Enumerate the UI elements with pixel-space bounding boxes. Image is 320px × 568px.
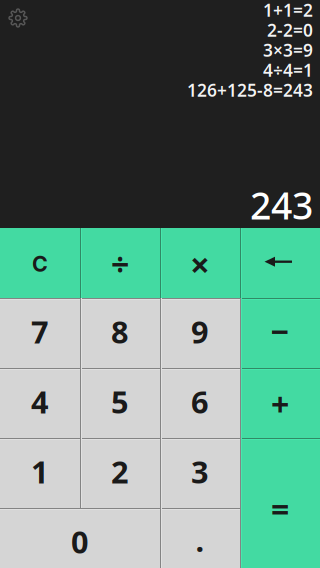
button[interactable]: 9 bbox=[160, 298, 240, 368]
button[interactable]: 2 bbox=[80, 438, 160, 508]
staticText: 243 bbox=[250, 180, 313, 230]
staticText: ÷ bbox=[111, 242, 129, 286]
button[interactable]: 4 bbox=[0, 368, 80, 438]
button[interactable]: 6 bbox=[160, 368, 240, 438]
staticText: 8 bbox=[111, 311, 129, 352]
staticText: 5 bbox=[111, 381, 129, 422]
button[interactable]: 8 bbox=[80, 298, 160, 368]
button[interactable]: ÷ bbox=[80, 228, 160, 298]
button[interactable]: C bbox=[0, 228, 80, 298]
staticText: . bbox=[195, 519, 204, 561]
staticText: 3×3=9 bbox=[263, 38, 313, 62]
button[interactable]: . bbox=[160, 508, 240, 568]
staticText: × bbox=[190, 240, 210, 288]
staticText: C bbox=[32, 251, 48, 277]
staticText: 2-2=0 bbox=[267, 18, 313, 42]
staticText: + bbox=[271, 382, 289, 426]
button[interactable]: − bbox=[240, 298, 320, 368]
staticText: = bbox=[271, 487, 289, 531]
staticText: − bbox=[270, 309, 289, 353]
staticText: 9 bbox=[191, 311, 209, 352]
button[interactable]: Settings bbox=[1, 1, 35, 35]
button[interactable]: × bbox=[160, 228, 240, 298]
staticText: 0 bbox=[71, 521, 89, 562]
button[interactable]: 0 bbox=[0, 508, 160, 568]
staticText: 4 bbox=[31, 381, 49, 422]
staticText: 2 bbox=[111, 451, 129, 492]
staticText: 6 bbox=[191, 381, 209, 422]
button[interactable]: + bbox=[240, 368, 320, 438]
staticText: 1+1=2 bbox=[263, 0, 313, 22]
button[interactable]: 7 bbox=[0, 298, 80, 368]
button[interactable]: 5 bbox=[80, 368, 160, 438]
staticText: 1 bbox=[31, 451, 49, 492]
button[interactable]: 1 bbox=[0, 438, 80, 508]
staticText: 126+125-8=243 bbox=[187, 78, 313, 102]
staticText: 4÷4=1 bbox=[263, 58, 313, 82]
staticText: 7 bbox=[31, 311, 49, 352]
button[interactable]: 3 bbox=[160, 438, 240, 508]
button[interactable]: Delete bbox=[240, 228, 320, 298]
button[interactable]: = bbox=[240, 438, 320, 568]
staticText: 3 bbox=[191, 451, 209, 492]
